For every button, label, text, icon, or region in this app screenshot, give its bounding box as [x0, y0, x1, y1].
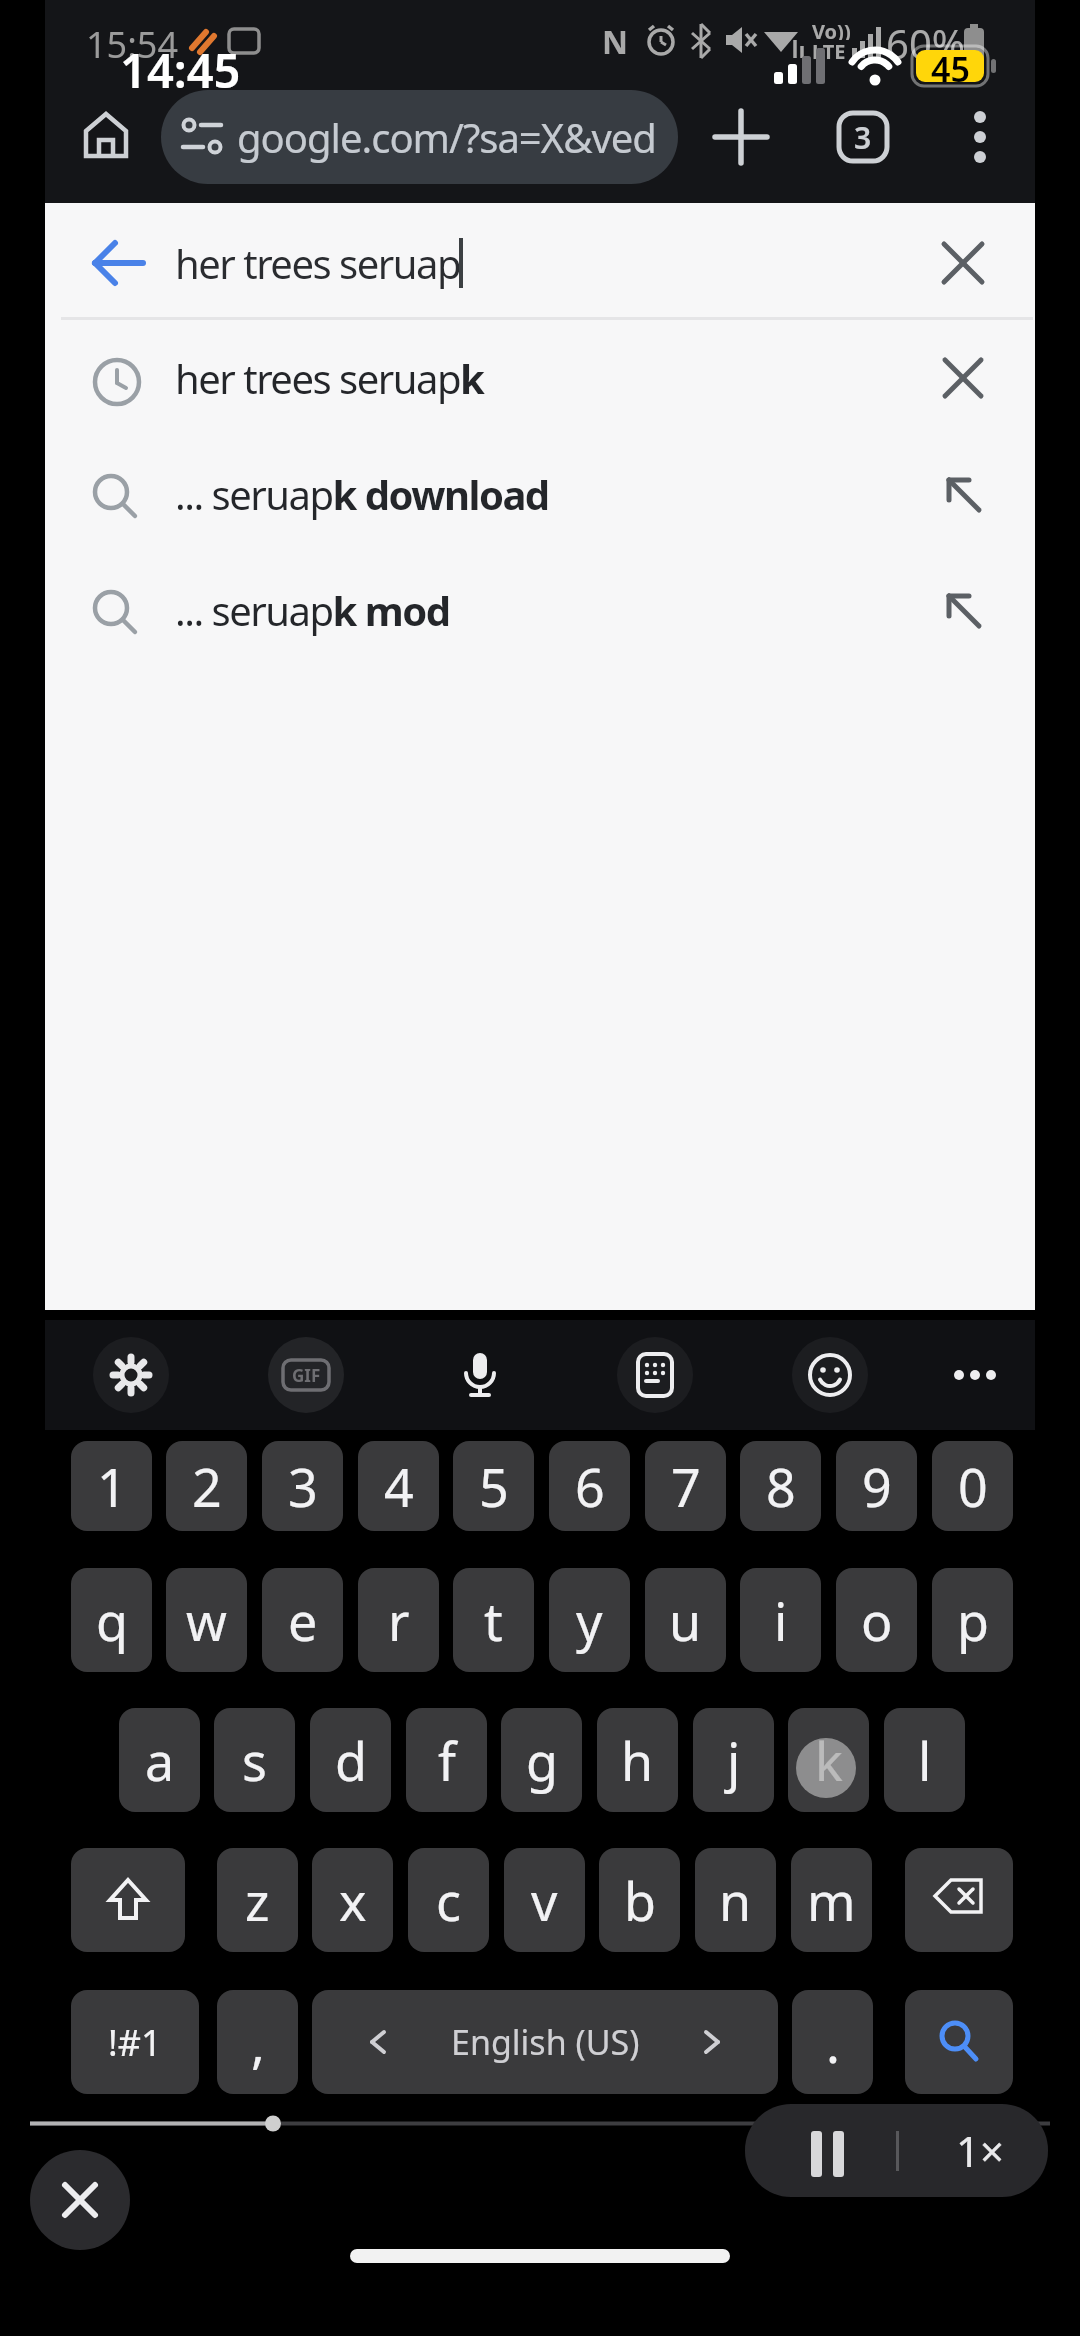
button[interactable]: ... seruapk mod [45, 560, 1035, 660]
button[interactable]: a [119, 1708, 200, 1812]
button[interactable]: n [695, 1848, 776, 1952]
button[interactable]: 3 [262, 1441, 343, 1531]
button[interactable]: j [693, 1708, 774, 1812]
staticText: m [807, 1865, 856, 1936]
button[interactable]: l [884, 1708, 965, 1812]
staticText: google.com/?sa=X&ved [237, 110, 656, 164]
staticText: c [436, 1865, 461, 1936]
button[interactable] [921, 221, 1005, 305]
button[interactable]: h [597, 1708, 678, 1812]
button[interactable]: z [217, 1848, 298, 1952]
staticText: 0 [958, 1451, 988, 1522]
button[interactable]: . [792, 1990, 873, 2094]
staticText: p [957, 1585, 989, 1656]
staticText: s [242, 1725, 267, 1796]
button[interactable] [792, 1337, 868, 1413]
button[interactable]: g [501, 1708, 582, 1812]
button[interactable]: her trees seruapk [45, 328, 1035, 428]
button[interactable]: q [71, 1568, 152, 1672]
button[interactable]: u [645, 1568, 726, 1672]
button[interactable] [442, 1337, 518, 1413]
button[interactable]: GIF [268, 1337, 344, 1413]
button[interactable] [921, 568, 1005, 652]
button[interactable]: t [453, 1568, 534, 1672]
staticText: a [145, 1725, 175, 1796]
staticText: 45 [931, 46, 970, 86]
button[interactable]: 5 [453, 1441, 534, 1531]
button[interactable]: o [836, 1568, 917, 1672]
staticText: 7 [671, 1451, 701, 1522]
button[interactable]: , [217, 1990, 298, 2094]
staticText: y [576, 1585, 603, 1656]
button[interactable]: 1 [71, 1441, 152, 1531]
staticText: e [288, 1585, 318, 1656]
staticText: 4 [384, 1451, 414, 1522]
staticText: N [602, 20, 629, 60]
button[interactable]: 4 [358, 1441, 439, 1531]
staticText: her trees seruapk [175, 351, 484, 405]
button[interactable] [71, 1848, 185, 1952]
button[interactable]: y [549, 1568, 630, 1672]
staticText: j [727, 1725, 741, 1796]
button[interactable]: f [406, 1708, 487, 1812]
button[interactable] [713, 109, 769, 165]
button[interactable]: p [932, 1568, 1013, 1672]
button[interactable] [921, 336, 1005, 420]
staticText: f [438, 1725, 456, 1796]
button[interactable]: 7 [645, 1441, 726, 1531]
button[interactable] [30, 2150, 130, 2250]
button[interactable] [93, 1337, 169, 1413]
button[interactable]: m [791, 1848, 872, 1952]
button[interactable]: d [310, 1708, 391, 1812]
staticText: g [526, 1725, 558, 1796]
staticText: LTE [812, 38, 846, 60]
button[interactable] [905, 1848, 1013, 1952]
staticText: 60% [886, 16, 965, 62]
button[interactable]: 0 [932, 1441, 1013, 1531]
button[interactable]: r [358, 1568, 439, 1672]
button[interactable]: google.com/?sa=X&ved [161, 90, 678, 184]
button[interactable]: e [262, 1568, 343, 1672]
button[interactable] [785, 2104, 865, 2197]
button[interactable]: x [312, 1848, 393, 1952]
button[interactable]: 2 [166, 1441, 247, 1531]
staticText: l [918, 1725, 932, 1796]
staticText: u [669, 1585, 702, 1656]
button[interactable]: 6 [549, 1441, 630, 1531]
button[interactable]: ... seruapk download [45, 444, 1035, 544]
button[interactable]: b [599, 1848, 680, 1952]
staticText: t [484, 1585, 503, 1656]
button[interactable] [905, 1990, 1013, 2094]
button[interactable]: s [214, 1708, 295, 1812]
staticText: x [339, 1865, 367, 1936]
button[interactable]: 9 [836, 1441, 917, 1531]
button[interactable] [921, 452, 1005, 536]
button[interactable]: v [504, 1848, 585, 1952]
staticText: ... seruapk download [175, 467, 549, 521]
staticText: 8 [766, 1451, 796, 1522]
staticText: d [335, 1725, 367, 1796]
button[interactable]: 8 [740, 1441, 821, 1531]
staticText: , [251, 2007, 265, 2078]
staticText: 1× [956, 2122, 1005, 2179]
staticText: !#1 [108, 2018, 162, 2067]
staticText: n [719, 1865, 752, 1936]
staticText: h [621, 1725, 654, 1796]
button[interactable] [958, 109, 1002, 165]
staticText: 2 [192, 1451, 222, 1522]
staticText: v [531, 1865, 558, 1936]
staticText: . [826, 2007, 840, 2078]
staticText: ... seruapk mod [175, 583, 450, 637]
button[interactable]: 3 [837, 111, 889, 163]
button[interactable] [617, 1337, 693, 1413]
button[interactable] [73, 221, 153, 305]
button[interactable]: c [408, 1848, 489, 1952]
button[interactable]: 1× [925, 2104, 1035, 2197]
button[interactable]: w [166, 1568, 247, 1672]
button[interactable]: k [788, 1708, 869, 1812]
button[interactable] [937, 1337, 1013, 1413]
button[interactable]: i [740, 1568, 821, 1672]
button[interactable]: !#1 [71, 1990, 199, 2094]
staticText: 9 [862, 1451, 892, 1522]
button[interactable]: English (US) [312, 1990, 778, 2094]
